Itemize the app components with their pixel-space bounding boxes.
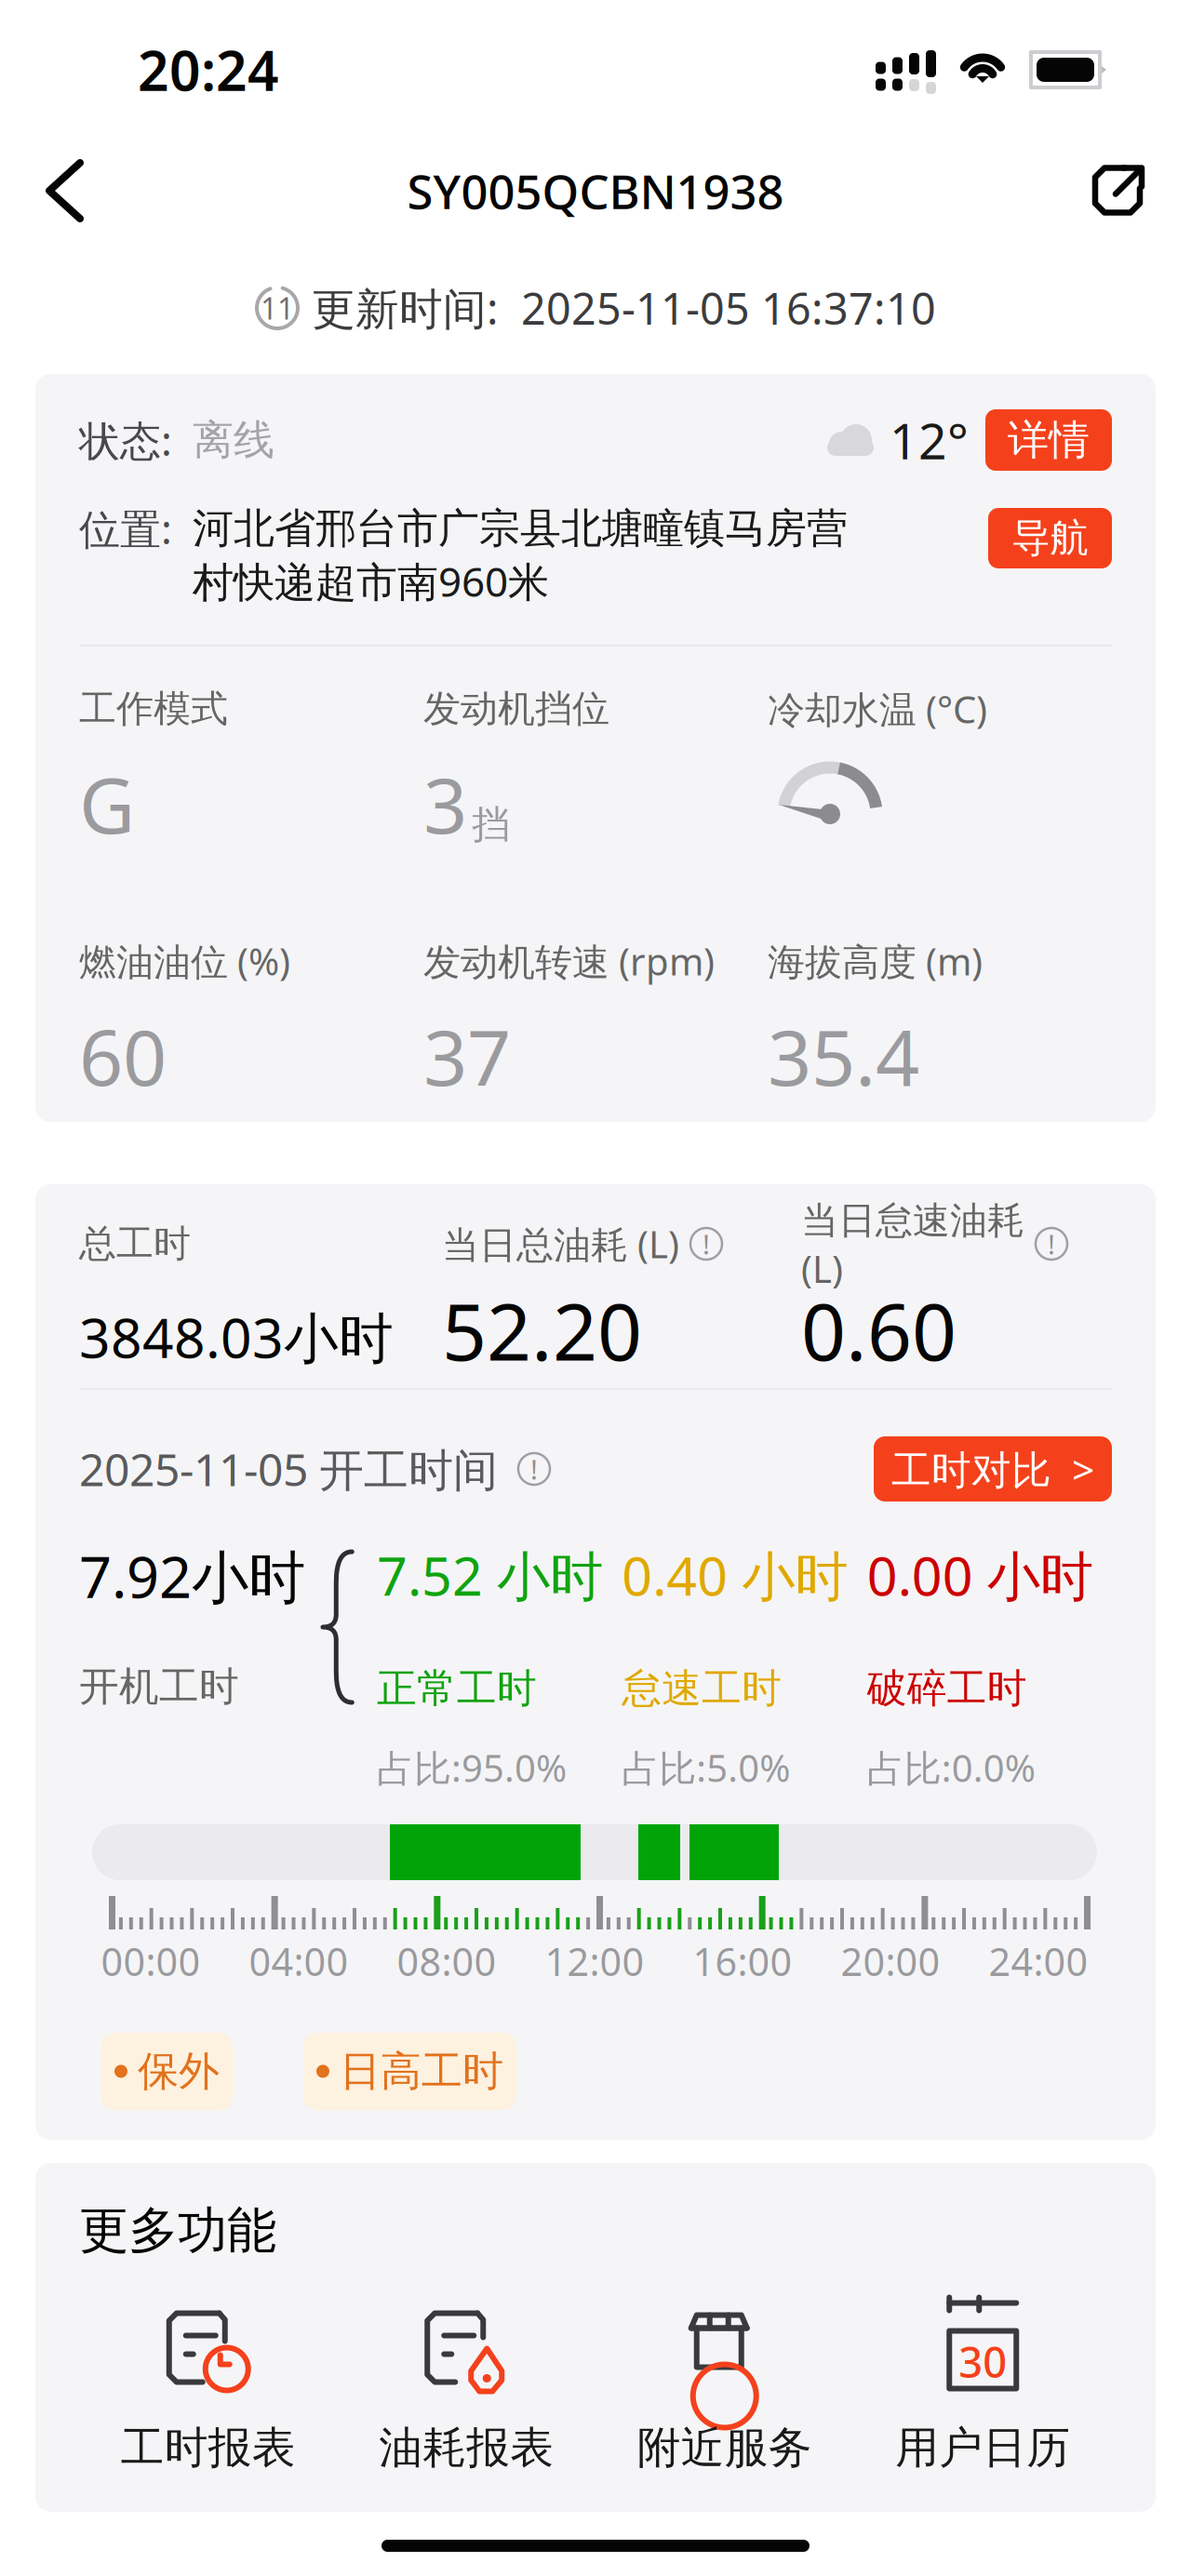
- staticText: 油耗报表: [379, 2421, 554, 2474]
- staticText: 占比:95.0%: [377, 1743, 567, 1792]
- staticText: 离线: [193, 415, 274, 465]
- staticText: 详情: [1008, 415, 1090, 465]
- staticText: 工时对比 >: [891, 1443, 1094, 1495]
- staticText: 20:00: [841, 1936, 940, 1987]
- button[interactable]: 30: [854, 2306, 1112, 2474]
- staticText: 占比:0.0%: [867, 1743, 1035, 1792]
- staticText: 12°: [890, 407, 969, 473]
- staticText: 开机工时: [79, 1662, 239, 1711]
- staticText: 当日怠速油耗 (L): [801, 1194, 1024, 1293]
- staticText: 挡: [472, 801, 510, 848]
- button[interactable]: 工时报表: [79, 2306, 337, 2474]
- staticText: 位置:: [79, 501, 193, 556]
- staticText: 0.40 小时: [622, 1540, 848, 1610]
- button[interactable]: Share: [1069, 146, 1168, 236]
- staticText: 04:00: [249, 1936, 348, 1987]
- staticText: 发动机转速 (rpm): [423, 936, 715, 986]
- staticText: 冷却水温 (°C): [768, 684, 987, 734]
- staticText: 工作模式: [79, 686, 228, 732]
- staticText: 工时报表: [121, 2421, 296, 2474]
- staticText: 村快递超市南960米: [193, 554, 549, 608]
- staticText: 0.00 小时: [867, 1540, 1093, 1610]
- staticText: SY005QCBN1938: [407, 159, 784, 222]
- staticText: 占比:5.0%: [622, 1743, 790, 1792]
- button[interactable]: Back: [23, 144, 106, 237]
- staticText: 河北省邢台市广宗县北塘疃镇马房营: [193, 503, 848, 554]
- staticText: 7.52 小时: [377, 1540, 603, 1610]
- button[interactable]: 工时对比 >: [874, 1436, 1112, 1502]
- staticText: 用户日历: [895, 2421, 1070, 2474]
- staticText: !: [530, 1451, 538, 1487]
- staticText: 更多功能: [79, 2200, 276, 2261]
- staticText: 附近服务: [637, 2421, 812, 2474]
- staticText: 08:00: [397, 1936, 496, 1987]
- button[interactable]: 详情: [985, 409, 1112, 471]
- staticText: 7.92小时: [79, 1538, 305, 1614]
- staticText: G: [79, 753, 135, 855]
- staticText: 状态:: [79, 413, 193, 467]
- staticText: 发动机挡位: [423, 686, 609, 732]
- staticText: 当日总油耗 (L): [442, 1219, 679, 1268]
- button[interactable]: 附近服务: [595, 2306, 854, 2474]
- button[interactable]: 油耗报表: [337, 2306, 595, 2474]
- staticText: 3: [423, 753, 467, 855]
- staticText: 正常工时: [377, 1664, 537, 1713]
- staticText: 总工时: [79, 1221, 191, 1267]
- button[interactable]: 导航: [988, 501, 1112, 568]
- staticText: 导航: [1012, 515, 1088, 562]
- staticText: 24:00: [989, 1936, 1088, 1987]
- staticText: !: [1048, 1226, 1055, 1262]
- staticText: 30: [959, 2334, 1007, 2390]
- staticText: 37: [423, 1005, 511, 1107]
- staticText: 60: [79, 1005, 167, 1107]
- staticText: 00:00: [101, 1936, 201, 1987]
- staticText: 2025-11-05 开工时间: [79, 1439, 498, 1499]
- staticText: 日高工时: [340, 2046, 503, 2096]
- staticText: 海拔高度 (m): [768, 936, 983, 986]
- staticText: 怠速工时: [622, 1664, 782, 1713]
- staticText: 燃油油位 (%): [79, 936, 290, 986]
- staticText: 更新时间: 2025-11-05 16:37:10: [312, 279, 936, 337]
- staticText: 20:24: [138, 33, 279, 106]
- staticText: !: [703, 1226, 710, 1262]
- staticText: 0.60: [801, 1278, 957, 1382]
- staticText: 12:00: [545, 1936, 644, 1987]
- staticText: 破碎工时: [867, 1664, 1027, 1713]
- staticText: 52.20: [442, 1278, 642, 1382]
- staticText: 保外: [138, 2046, 220, 2096]
- staticText: 11: [261, 288, 294, 328]
- staticText: 3848.03小时: [79, 1301, 394, 1373]
- staticText: 16:00: [693, 1936, 792, 1987]
- staticText: 35.4: [768, 1005, 919, 1107]
